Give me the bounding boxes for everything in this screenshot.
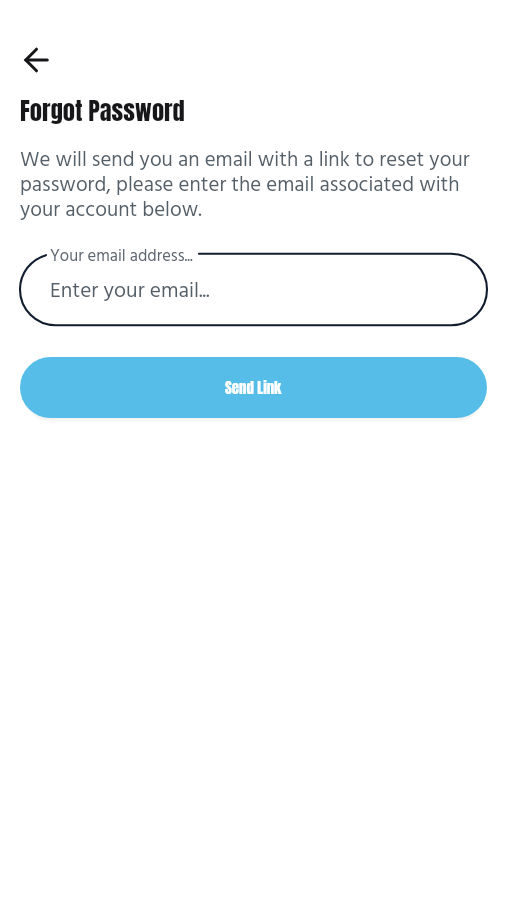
staticText: Forgot Password <box>20 92 185 129</box>
button[interactable]: Send Link <box>20 357 487 418</box>
button[interactable]: Your email address... <box>19 252 488 327</box>
staticText: Send Link <box>225 377 282 399</box>
staticText: We will send you an email with a link to… <box>20 144 488 228</box>
staticText: Enter your email... <box>50 274 210 308</box>
staticText: Your email address... <box>50 243 193 270</box>
button[interactable]: Back <box>15 39 56 80</box>
